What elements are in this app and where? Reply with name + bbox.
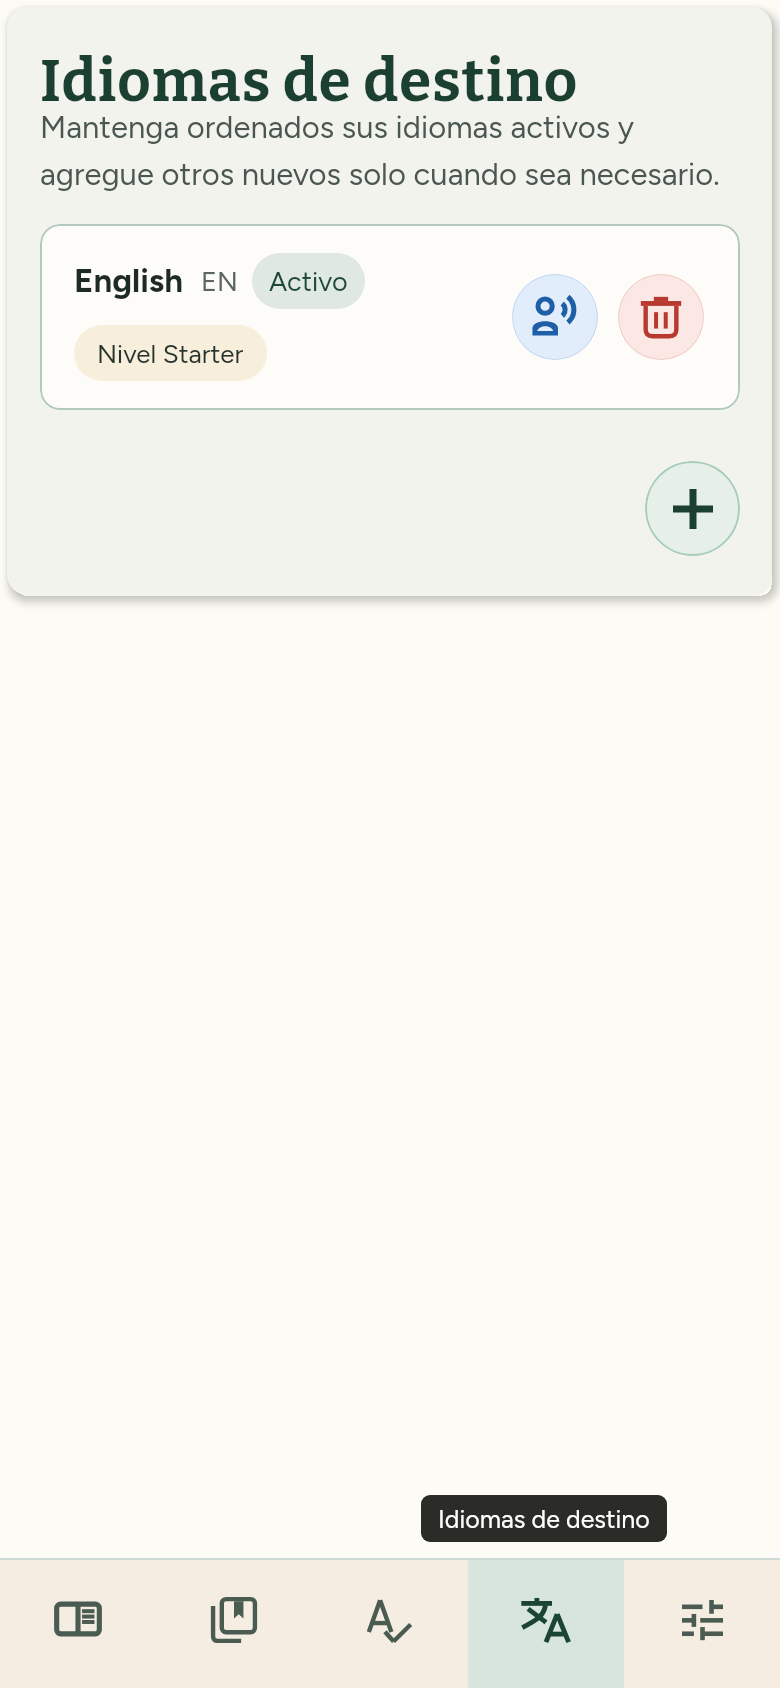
button[interactable]: Agregar idioma	[645, 461, 740, 556]
staticText: Activo	[269, 265, 348, 297]
staticText: Idiomas de destino	[40, 47, 579, 117]
button[interactable]: Idiomas de destino	[468, 1560, 624, 1688]
button[interactable]: Pronunciar	[512, 274, 598, 360]
staticText: English	[74, 261, 183, 301]
button[interactable]: English	[40, 224, 740, 410]
button[interactable]: Eliminar	[618, 274, 704, 360]
button[interactable]: Ortografia	[312, 1560, 468, 1688]
button[interactable]: Lectura	[0, 1560, 156, 1688]
button[interactable]: Ajustes	[624, 1560, 780, 1688]
button[interactable]: Biblioteca	[156, 1560, 312, 1688]
staticText: EN	[201, 265, 238, 297]
staticText: Mantenga ordenados sus idiomas activos y…	[40, 109, 720, 193]
staticText: Nivel Starter	[97, 338, 244, 369]
staticText: Idiomas de destino	[438, 1504, 650, 1534]
